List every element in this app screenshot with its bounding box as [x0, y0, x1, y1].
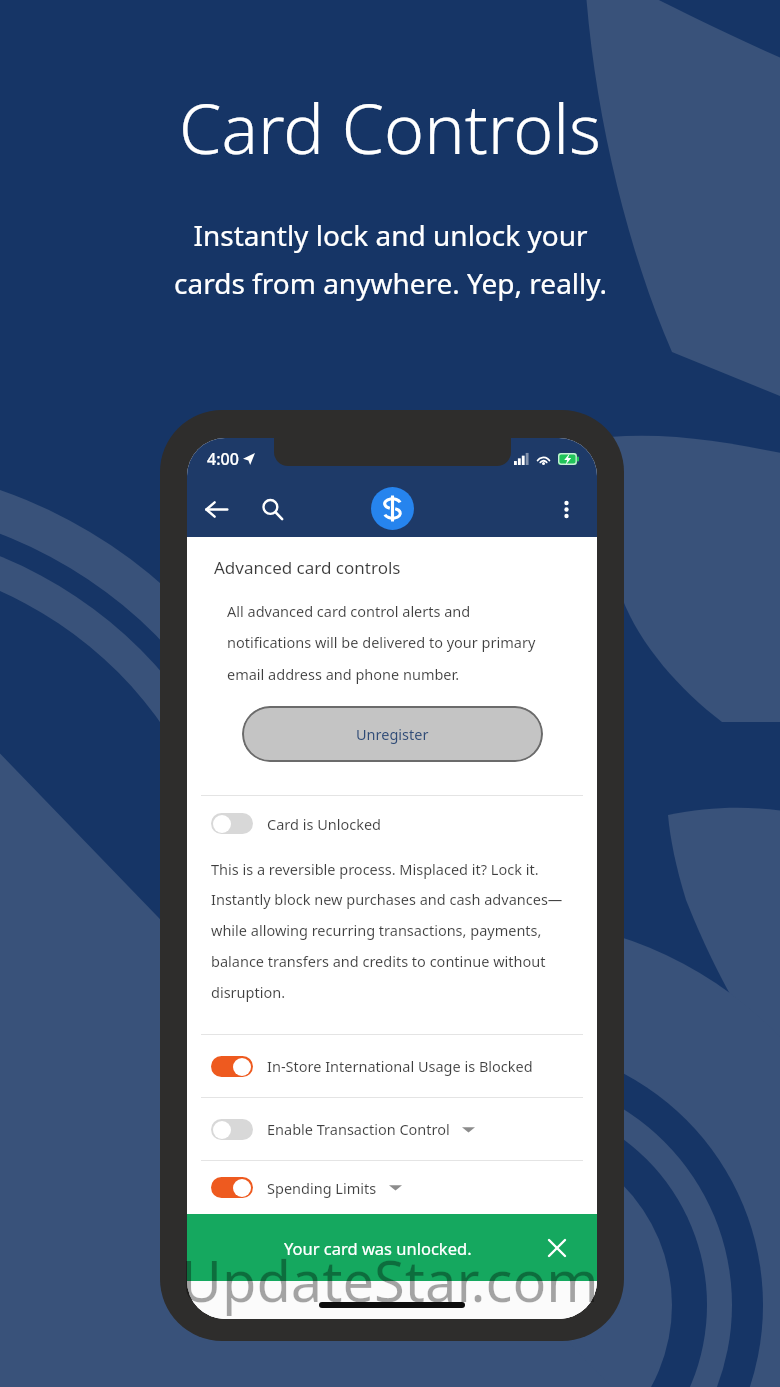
staticText: Advanced card controls [214, 556, 401, 579]
staticText: Your card was unlocked. [284, 1237, 472, 1259]
staticText: Card is Unlocked [267, 814, 382, 834]
button[interactable]: Card is Unlocked [187, 796, 597, 851]
staticText: 4:00 [207, 448, 239, 470]
staticText: In-Store International Usage is Blocked [267, 1056, 533, 1076]
staticText: All advanced card control alerts and not… [227, 601, 536, 684]
button[interactable]: Dismiss [543, 1234, 571, 1262]
staticText: Unregister [356, 724, 429, 744]
staticText: Spending Limits [267, 1178, 377, 1198]
staticText: UpdateStar.com [181, 1242, 599, 1318]
button[interactable]: Unregister [242, 706, 543, 762]
staticText: Instantly lock and unlock your cards fro… [174, 216, 607, 303]
staticText: Enable Transaction Control [267, 1119, 450, 1139]
button[interactable]: More options [547, 490, 585, 528]
button[interactable]: Search [253, 490, 291, 528]
button[interactable]: Enable Transaction Control [187, 1098, 597, 1160]
staticText: This is a reversible process. Misplaced … [211, 859, 563, 1003]
staticText: Card Controls [179, 81, 601, 174]
button[interactable]: Spending Limits [187, 1161, 597, 1214]
button[interactable]: Back [197, 490, 235, 528]
button[interactable]: In-Store International Usage is Blocked [187, 1035, 597, 1097]
button[interactable]: Account [371, 487, 414, 530]
